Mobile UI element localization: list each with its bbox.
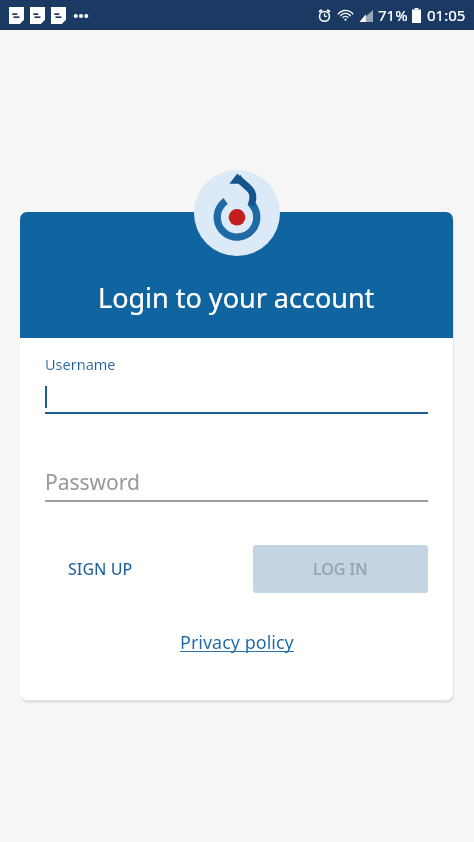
staticText: 01:05 bbox=[427, 5, 466, 25]
other: App logo bbox=[194, 170, 280, 256]
staticText: LOG IN bbox=[313, 558, 368, 580]
button[interactable]: SIGN UP bbox=[45, 544, 156, 594]
button[interactable]: Privacy policy bbox=[172, 626, 302, 659]
staticText: SIGN UP bbox=[68, 558, 133, 580]
staticText: Privacy policy bbox=[180, 630, 294, 655]
button[interactable]: Password bbox=[45, 468, 428, 502]
staticText: Password bbox=[45, 468, 140, 497]
staticText: Username bbox=[45, 354, 116, 374]
staticText: Login to your account bbox=[98, 279, 375, 316]
button[interactable] bbox=[45, 382, 428, 414]
staticText: 71% bbox=[378, 5, 408, 25]
button[interactable]: LOG IN bbox=[253, 545, 428, 593]
